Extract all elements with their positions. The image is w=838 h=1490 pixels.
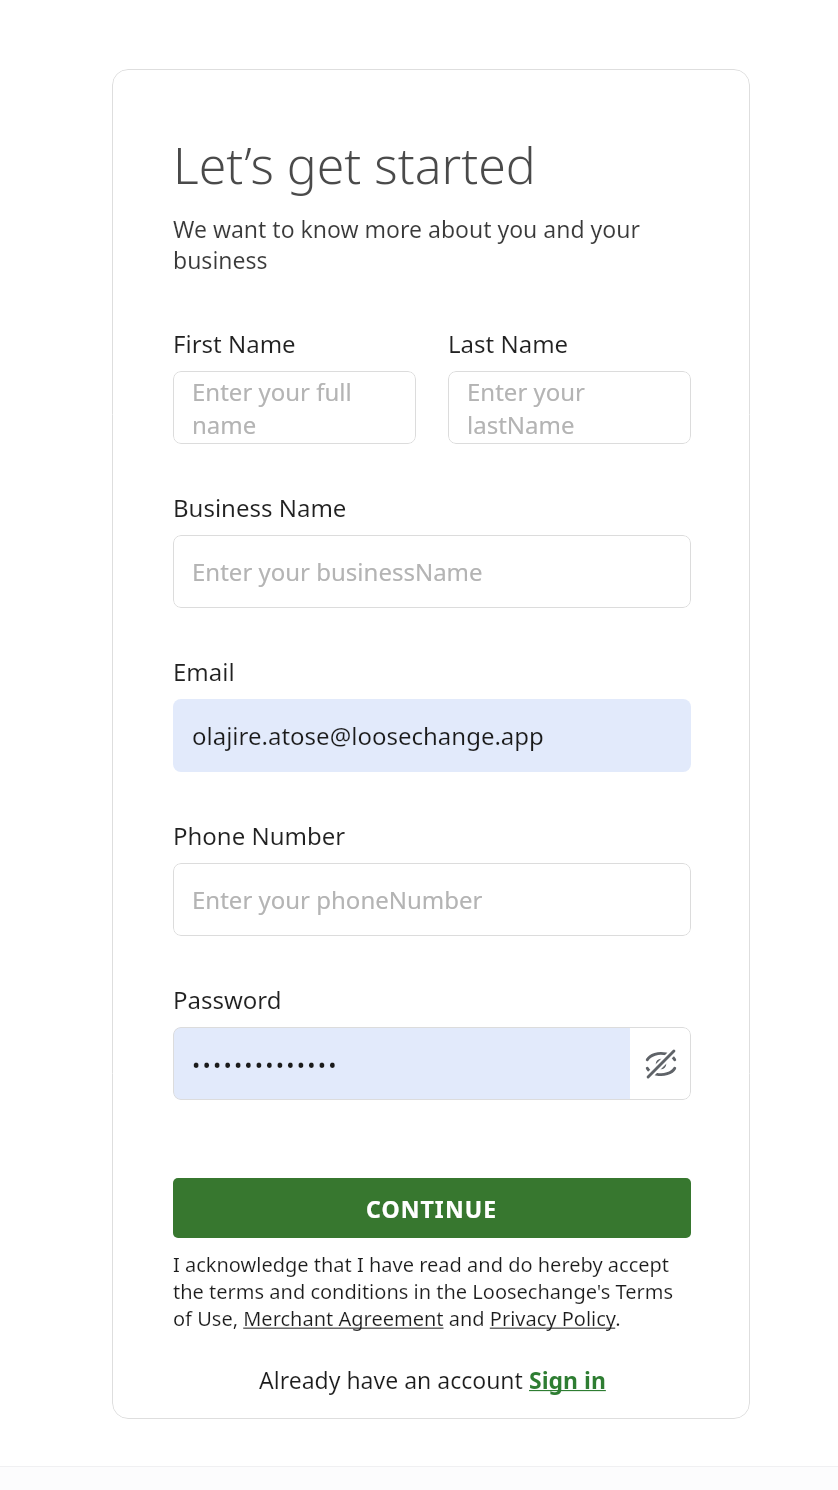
button[interactable]: CONTINUE: [173, 1178, 691, 1238]
staticText: Enter your phoneNumber: [192, 883, 483, 916]
staticText: Email: [173, 655, 235, 688]
button[interactable]: Enter your full name: [173, 371, 416, 444]
staticText: olajire.atose@loosechange.app: [192, 719, 544, 752]
staticText: Already have an account: [259, 1364, 529, 1395]
staticText: Let’s get started: [173, 131, 536, 199]
staticText: Enter your businessName: [192, 555, 483, 588]
staticText: Sign in: [529, 1364, 606, 1395]
staticText: Enter your full name: [192, 375, 397, 441]
button[interactable]: Hide password: [630, 1027, 691, 1100]
staticText: Phone Number: [173, 819, 346, 852]
staticText: ••••••••••••••: [192, 1049, 339, 1079]
button[interactable]: Enter your businessName: [173, 535, 691, 608]
button[interactable]: ••••••••••••••: [173, 1027, 630, 1100]
staticText: Enter your lastName: [467, 375, 672, 441]
staticText: Password: [173, 983, 282, 1016]
button[interactable]: Enter your lastName: [448, 371, 691, 444]
button[interactable]: Enter your phoneNumber: [173, 863, 691, 936]
button[interactable]: Already have an account: [259, 1364, 606, 1395]
staticText: First Name: [173, 327, 296, 360]
staticText: CONTINUE: [366, 1193, 498, 1224]
staticText: We want to know more about you and your …: [173, 213, 691, 275]
button[interactable]: olajire.atose@loosechange.app: [173, 699, 691, 772]
staticText: Last Name: [448, 327, 569, 360]
staticText: I acknowledge that I have read and do he…: [173, 1251, 691, 1332]
staticText: Business Name: [173, 491, 347, 524]
